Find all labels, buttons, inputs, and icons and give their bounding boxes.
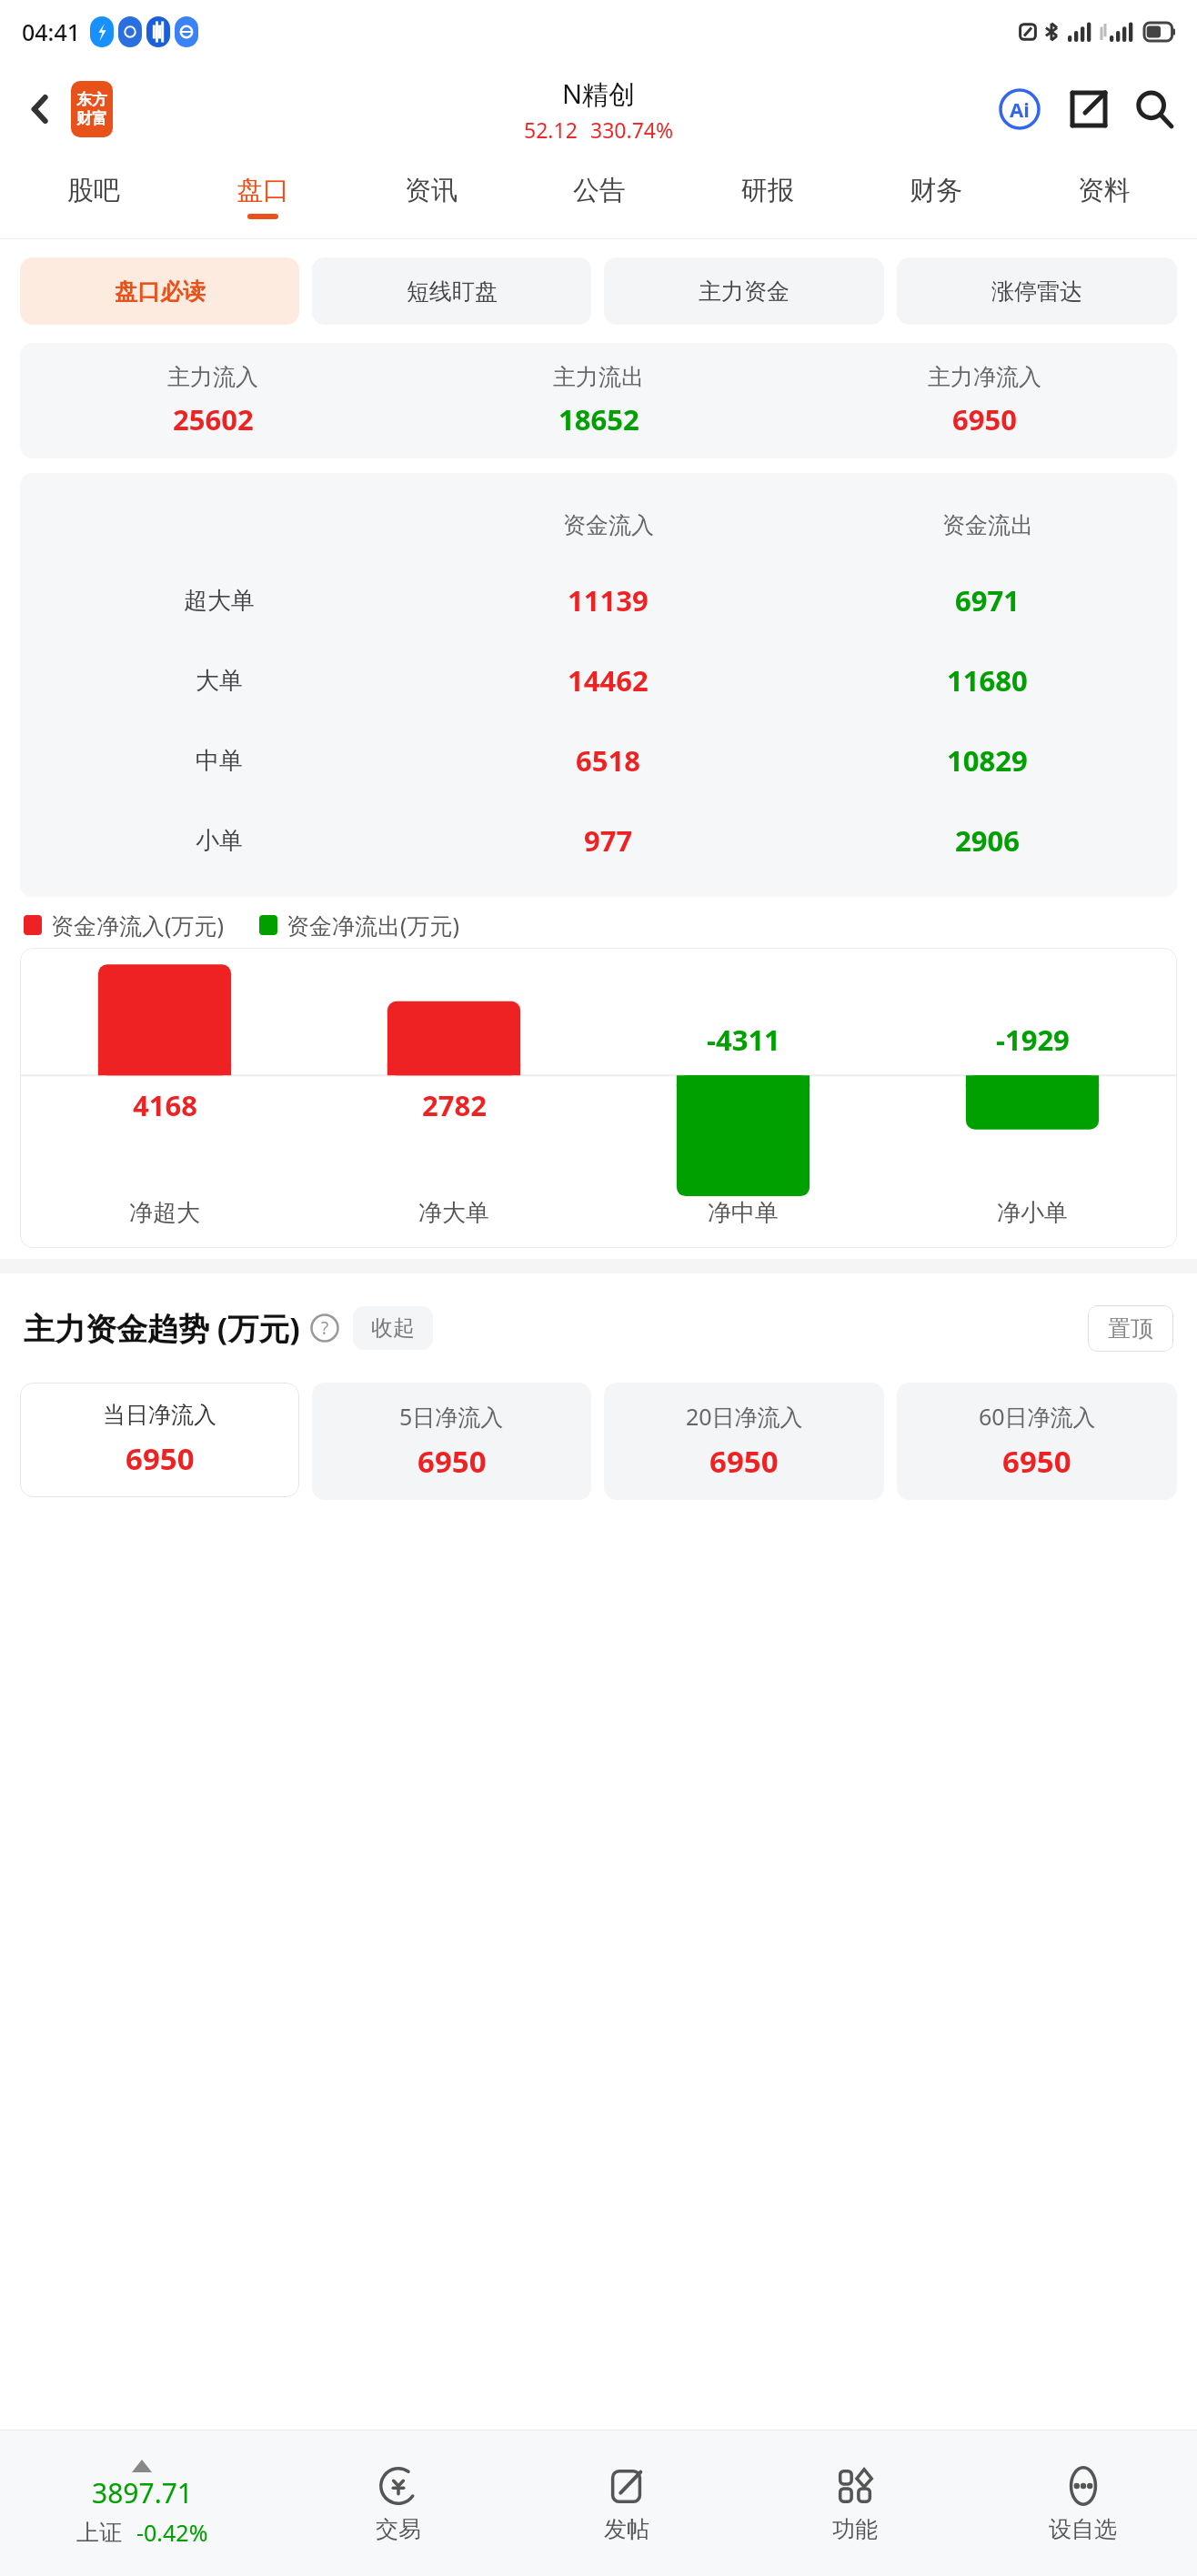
button[interactable]: 资料 (1020, 155, 1188, 238)
staticText: 4168 (133, 1086, 197, 1124)
staticText: 14462 (568, 661, 649, 699)
staticText: 净大单 (418, 1198, 489, 1228)
button[interactable]: 当日净流入 (20, 1383, 299, 1497)
staticText: 资金流入 (563, 511, 654, 539)
staticText: 小单 (196, 826, 243, 856)
staticText: 11680 (947, 661, 1028, 699)
button[interactable]: 功能 (740, 2430, 969, 2576)
button[interactable]: 涨停雷达 (897, 257, 1177, 325)
staticText: 18652 (558, 400, 639, 438)
button[interactable]: 财务 (851, 155, 1020, 238)
button[interactable]: -4311 (20, 948, 1177, 1248)
button[interactable]: Back (16, 85, 65, 134)
button[interactable]: Share (1062, 83, 1115, 136)
staticText: -4311 (707, 1021, 780, 1059)
staticText: 财务 (910, 174, 962, 207)
staticText: -0.42% (136, 2517, 208, 2548)
staticText: 资料 (1078, 174, 1131, 207)
staticText: 2782 (422, 1086, 487, 1124)
staticText: 交易 (376, 2515, 421, 2543)
staticText: 中单 (196, 746, 243, 776)
staticText: 6950 (709, 1441, 779, 1482)
button[interactable]: 短线盯盘 (312, 257, 591, 325)
staticText: 5日净流入 (399, 1401, 504, 1432)
staticText: 股吧 (67, 174, 120, 207)
staticText: 研报 (741, 174, 794, 207)
staticText: 涨停雷达 (991, 277, 1082, 306)
button[interactable]: East Money (71, 81, 113, 137)
staticText: 盘口必读 (115, 277, 206, 306)
staticText: 6971 (955, 581, 1020, 619)
staticText: -1929 (996, 1021, 1070, 1059)
staticText: 10829 (947, 741, 1028, 780)
button[interactable]: 研报 (683, 155, 851, 238)
staticText: 东方 (76, 90, 107, 109)
staticText: 发帖 (604, 2515, 649, 2543)
staticText: 资金流出 (942, 511, 1033, 539)
button[interactable]: 主力流入 (20, 363, 1177, 438)
staticText: 财富 (76, 109, 107, 128)
staticText: 上证 (76, 2519, 122, 2547)
staticText: Ai (1010, 96, 1030, 123)
button[interactable]: 3897.71 (0, 2460, 284, 2548)
staticText: 公告 (573, 174, 626, 207)
staticText: 净超大 (129, 1198, 200, 1228)
staticText: 收起 (371, 1314, 415, 1342)
staticText: 当日净流入 (103, 1401, 216, 1429)
staticText: 3897.71 (92, 2474, 193, 2511)
staticText: 主力净流入 (928, 363, 1041, 391)
staticText: 盘口 (236, 174, 289, 207)
button[interactable]: 设自选 (969, 2430, 1197, 2576)
staticText: 设自选 (1049, 2515, 1117, 2543)
button[interactable]: Search (1128, 83, 1181, 136)
staticText: 净小单 (997, 1198, 1068, 1228)
button[interactable]: 资金流入 (20, 489, 1177, 880)
staticText: 资金净流入(万元) (51, 910, 225, 941)
staticText: 6950 (952, 400, 1017, 438)
staticText: 6518 (576, 741, 640, 780)
staticText: 04:41 (22, 16, 81, 47)
staticText: 6950 (417, 1441, 487, 1482)
staticText: ? (321, 1316, 329, 1340)
button[interactable]: 20日净流入 (604, 1383, 884, 1500)
staticText: 资金净流出(万元) (287, 910, 460, 941)
staticText: 主力流入 (167, 363, 258, 391)
button[interactable]: 资讯 (347, 155, 515, 238)
staticText: 20日净流入 (686, 1401, 803, 1432)
staticText: 主力资金趋势 (万元) (24, 1307, 300, 1349)
staticText: N精创 (562, 75, 636, 112)
button[interactable]: 收起 (353, 1306, 433, 1350)
staticText: 977 (584, 821, 633, 860)
staticText: 2906 (955, 821, 1020, 860)
staticText: 25602 (173, 400, 254, 438)
staticText: 置顶 (1108, 1314, 1153, 1343)
button[interactable]: 盘口 (178, 155, 347, 238)
button[interactable]: 盘口必读 (20, 257, 299, 325)
staticText: 主力流出 (553, 363, 644, 391)
button[interactable]: 交易 (284, 2430, 512, 2576)
staticText: 功能 (832, 2515, 878, 2543)
staticText: 330.74% (590, 116, 674, 144)
staticText: 11139 (568, 581, 649, 619)
staticText: 资讯 (405, 174, 458, 207)
button[interactable]: 置顶 (1088, 1305, 1173, 1352)
staticText: 60日净流入 (979, 1401, 1096, 1432)
button[interactable]: 主力资金 (604, 257, 884, 325)
button[interactable]: Help (309, 1313, 340, 1343)
button[interactable]: 发帖 (512, 2430, 740, 2576)
staticText: 6950 (126, 1438, 195, 1479)
staticText: 净中单 (708, 1198, 779, 1228)
staticText: 52.12 (524, 116, 578, 144)
button[interactable]: 5日净流入 (312, 1383, 591, 1500)
staticText: 主力资金 (699, 277, 790, 306)
staticText: 短线盯盘 (407, 277, 498, 306)
staticText: 超大单 (184, 586, 255, 616)
button[interactable]: 60日净流入 (897, 1383, 1177, 1500)
staticText: 大单 (196, 666, 243, 696)
button[interactable]: 股吧 (9, 155, 178, 238)
button[interactable]: AI assistant (993, 83, 1046, 136)
button[interactable]: 公告 (515, 155, 683, 238)
staticText: 6950 (1002, 1441, 1071, 1482)
